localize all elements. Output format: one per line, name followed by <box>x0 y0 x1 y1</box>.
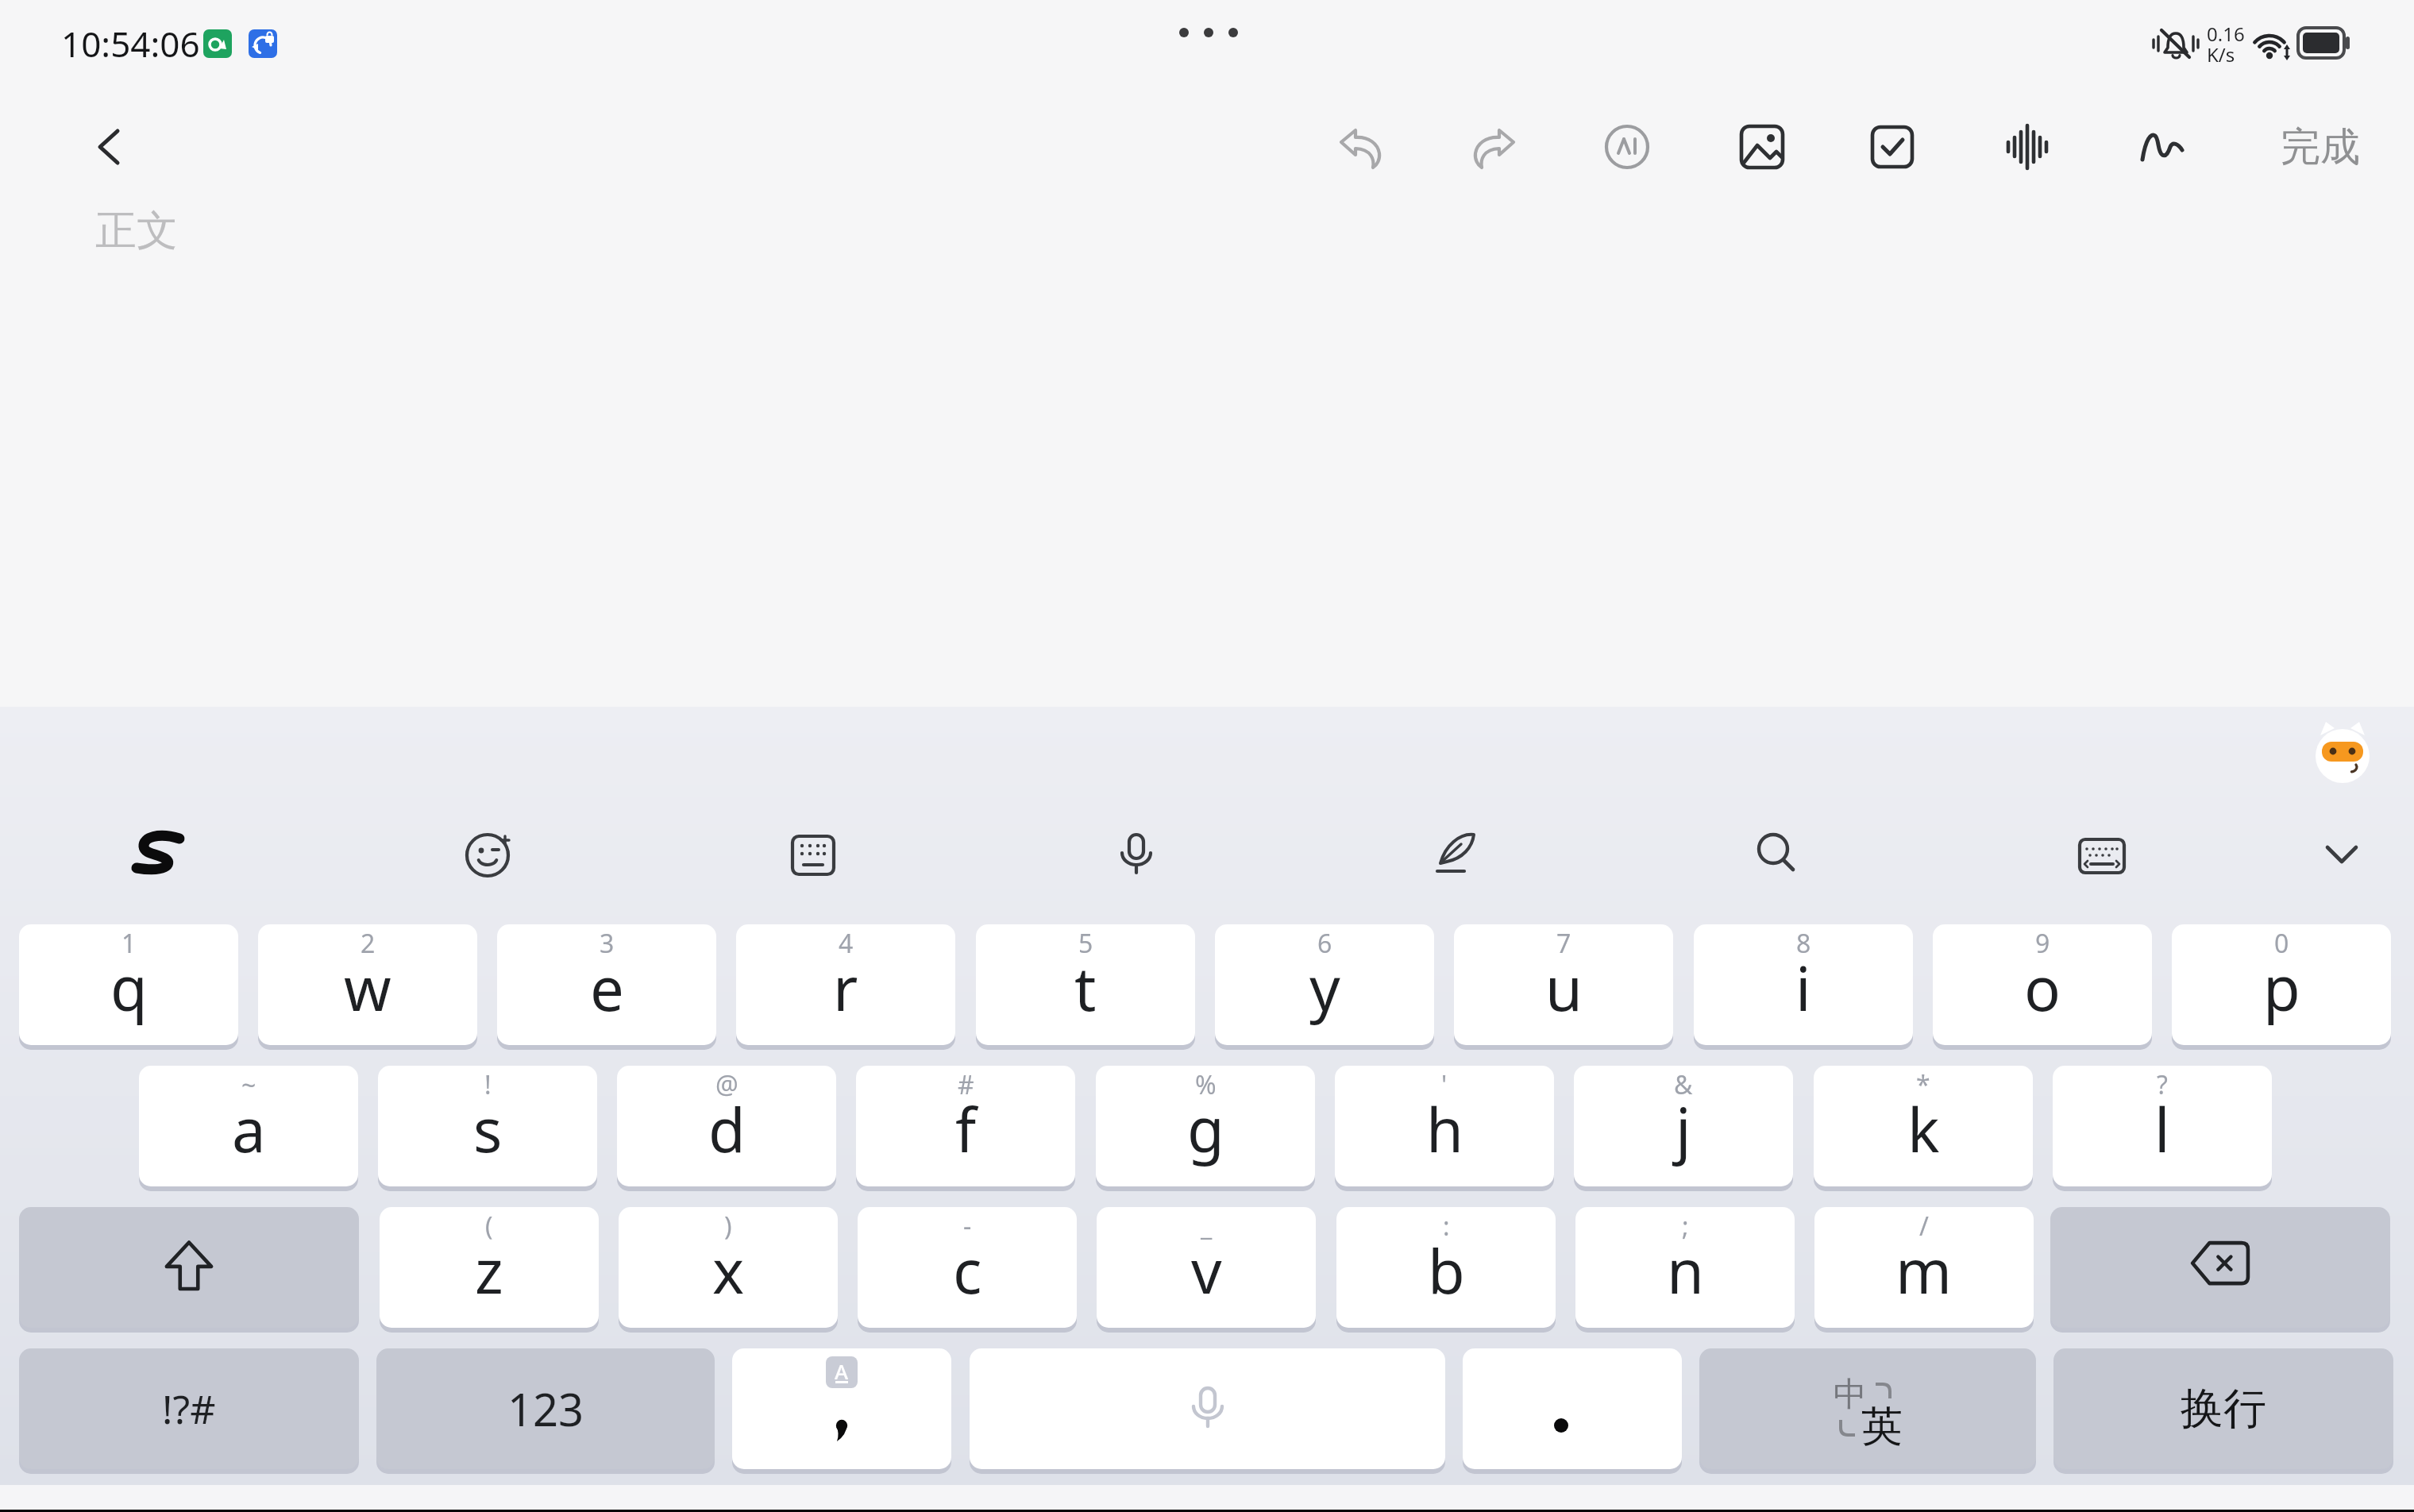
button[interactable] <box>1468 125 1516 172</box>
button[interactable] <box>1433 827 1483 877</box>
staticText: 8 <box>1796 926 1811 961</box>
staticText: : <box>1443 1209 1450 1244</box>
button[interactable] <box>970 1348 1445 1469</box>
button[interactable]: 123 <box>376 1348 715 1469</box>
button[interactable]: ; <box>1575 1207 1795 1328</box>
staticText: A <box>835 1357 849 1385</box>
button[interactable] <box>2077 830 2127 881</box>
button[interactable]: 3 <box>497 924 716 1045</box>
staticText: 1 <box>121 926 137 961</box>
button[interactable] <box>130 831 186 876</box>
button[interactable]: ? <box>2053 1066 2272 1186</box>
staticText: * <box>1916 1067 1930 1102</box>
button[interactable]: ( <box>380 1207 599 1328</box>
button[interactable] <box>1111 830 1162 881</box>
staticText: 123 <box>507 1379 584 1439</box>
button[interactable] <box>788 830 839 881</box>
staticText: 9 <box>2035 926 2050 961</box>
button[interactable] <box>1738 123 1786 171</box>
button[interactable]: % <box>1096 1066 1315 1186</box>
staticText: 正文 <box>95 205 178 257</box>
staticText: j <box>1676 1088 1691 1171</box>
button[interactable] <box>89 125 133 169</box>
staticText: _ <box>1201 1209 1213 1244</box>
staticText: 中 <box>1834 1374 1867 1416</box>
staticText: h <box>1426 1088 1463 1171</box>
staticText: 4 <box>839 926 854 961</box>
staticText: n <box>1667 1229 1704 1312</box>
button[interactable]: 1 <box>19 924 238 1045</box>
button[interactable]: 7 <box>1454 924 1673 1045</box>
staticText: 5 <box>1078 926 1093 961</box>
button[interactable]: ~ <box>139 1066 358 1186</box>
button[interactable] <box>2312 719 2373 783</box>
staticText: y <box>1309 947 1340 1029</box>
button[interactable]: : <box>1336 1207 1556 1328</box>
button[interactable]: 中 <box>1699 1348 2036 1469</box>
button[interactable]: 完成 <box>2265 121 2376 173</box>
staticText: ? <box>2157 1067 2168 1102</box>
button[interactable] <box>1603 125 1651 172</box>
button[interactable] <box>1463 1348 1682 1469</box>
staticText: r <box>833 947 858 1029</box>
button[interactable]: _ <box>1097 1207 1316 1328</box>
button[interactable] <box>2050 1207 2390 1328</box>
staticText: ) <box>724 1209 732 1244</box>
button[interactable]: 6 <box>1215 924 1434 1045</box>
button[interactable]: # <box>856 1066 1075 1186</box>
staticText: d <box>708 1088 746 1171</box>
staticText: t <box>1074 947 1097 1029</box>
staticText: # <box>958 1067 974 1102</box>
button[interactable] <box>464 830 515 881</box>
staticText: ' <box>1441 1067 1448 1102</box>
staticText: 换行 <box>2181 1382 2266 1436</box>
staticText: 7 <box>1556 926 1571 961</box>
staticText: 6 <box>1317 926 1332 961</box>
button[interactable]: * <box>1814 1066 2033 1186</box>
button[interactable]: 8 <box>1694 924 1913 1045</box>
button[interactable]: ) <box>619 1207 838 1328</box>
staticText: - <box>963 1209 972 1244</box>
staticText: ! <box>484 1067 492 1102</box>
staticText: b <box>1428 1229 1465 1312</box>
button[interactable]: 4 <box>736 924 955 1045</box>
button[interactable]: 0 <box>2172 924 2391 1045</box>
button[interactable] <box>1868 123 1916 171</box>
button[interactable]: A <box>732 1348 951 1469</box>
staticText: i <box>1795 947 1811 1029</box>
button[interactable]: & <box>1574 1066 1793 1186</box>
staticText: v <box>1191 1229 1222 1312</box>
staticText: q <box>110 947 148 1029</box>
staticText: e <box>590 947 624 1029</box>
staticText: a <box>232 1088 266 1171</box>
staticText: l <box>2154 1088 2170 1171</box>
button[interactable] <box>2003 123 2051 171</box>
staticText: / <box>1919 1209 1929 1244</box>
button[interactable]: - <box>858 1207 1077 1328</box>
button[interactable]: ! <box>378 1066 597 1186</box>
button[interactable]: !?# <box>19 1348 359 1469</box>
button[interactable]: / <box>1814 1207 2034 1328</box>
button[interactable]: 9 <box>1933 924 2152 1045</box>
staticText: 10:54:06 <box>61 20 200 67</box>
staticText: 完成 <box>2281 122 2360 172</box>
staticText: @ <box>715 1067 738 1102</box>
button[interactable]: 换行 <box>2053 1348 2393 1469</box>
button[interactable]: @ <box>617 1066 836 1186</box>
staticText: ~ <box>241 1067 256 1102</box>
staticText: K/s <box>2207 41 2235 67</box>
button[interactable] <box>1752 828 1803 879</box>
button[interactable]: 5 <box>976 924 1195 1045</box>
button[interactable] <box>2318 830 2369 881</box>
button[interactable]: 2 <box>258 924 477 1045</box>
staticText: & <box>1674 1067 1693 1102</box>
staticText: ( <box>485 1209 493 1244</box>
staticText: w <box>344 947 391 1029</box>
staticText: p <box>2263 947 2300 1029</box>
button[interactable] <box>19 1207 359 1328</box>
staticText: o <box>2024 947 2061 1029</box>
button[interactable] <box>1336 125 1383 172</box>
button[interactable]: ' <box>1335 1066 1554 1186</box>
button[interactable] <box>2138 123 2186 171</box>
staticText: 0.16 <box>2207 21 2245 47</box>
